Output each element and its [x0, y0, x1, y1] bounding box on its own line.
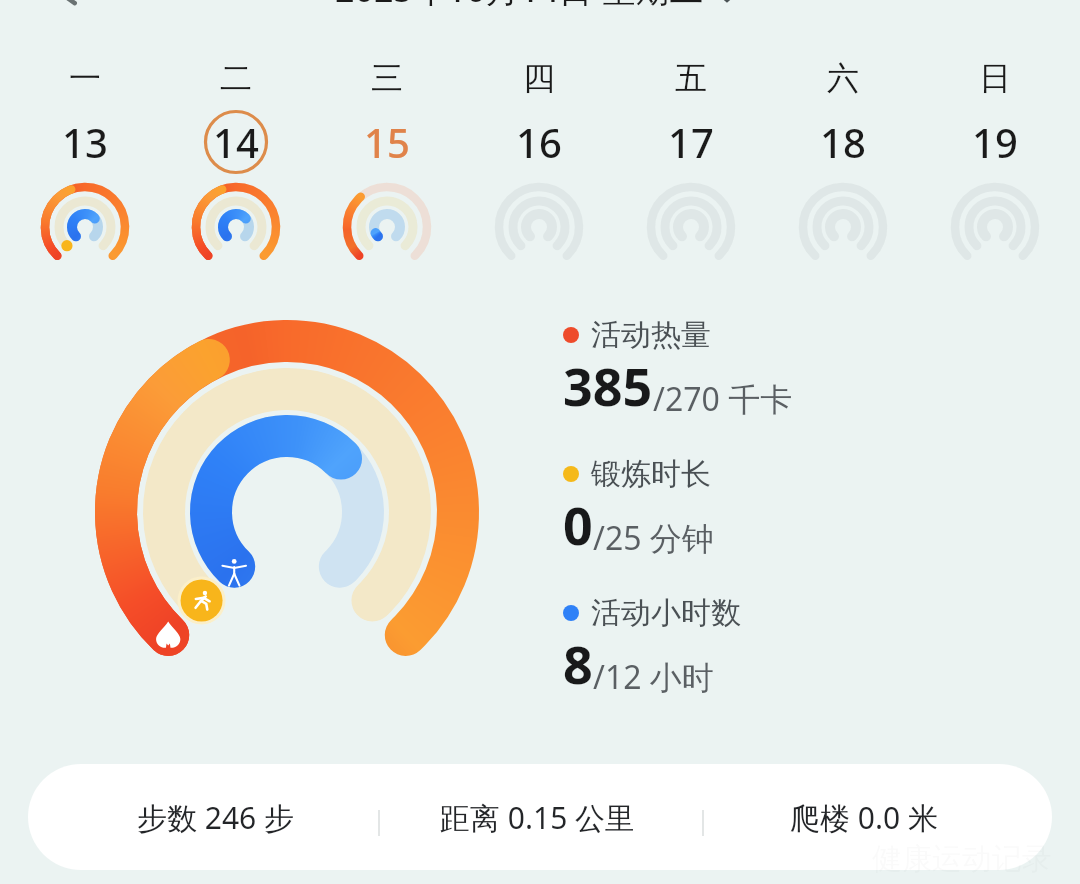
- staticText: 18: [820, 115, 866, 169]
- staticText: 活动热量: [591, 316, 711, 354]
- button[interactable]: 步数 246 步: [28, 764, 378, 870]
- staticText: 二: [220, 58, 252, 98]
- staticText: 四: [523, 58, 555, 98]
- button[interactable]: 四: [463, 58, 615, 272]
- button[interactable]: 六: [767, 58, 919, 272]
- button[interactable]: Activity rings: calories, exercise, stan…: [20, 300, 555, 700]
- staticText: 距离 0.15 公里: [440, 797, 636, 838]
- staticText: /25 分钟: [593, 516, 714, 560]
- button[interactable]: 锻炼时长: [563, 455, 714, 564]
- button[interactable]: 二: [160, 58, 311, 272]
- staticText: 16: [516, 115, 562, 169]
- staticText: 19: [972, 115, 1018, 169]
- staticText: 活动小时数: [591, 594, 741, 632]
- staticText: 五: [675, 58, 707, 98]
- button[interactable]: Back: [40, 0, 96, 12]
- button[interactable]: 三: [311, 58, 463, 272]
- staticText: /12 小时: [593, 655, 714, 699]
- staticText: 健康运动记录: [872, 840, 1052, 878]
- staticText: 385: [563, 350, 653, 421]
- staticText: 15: [364, 115, 410, 169]
- button[interactable]: 爬楼 0.0 米: [702, 764, 1052, 870]
- staticText: 步数 246 步: [137, 797, 295, 838]
- button[interactable]: 五: [615, 58, 767, 272]
- staticText: 日: [979, 58, 1011, 98]
- button[interactable]: 日: [919, 58, 1071, 272]
- staticText: 14: [213, 115, 259, 169]
- staticText: 六: [827, 58, 859, 98]
- button[interactable]: 活动热量: [563, 316, 793, 425]
- staticText: 锻炼时长: [591, 455, 711, 493]
- button[interactable]: 一: [9, 58, 160, 272]
- staticText: 三: [371, 58, 403, 98]
- staticText: 一: [69, 58, 101, 98]
- button[interactable]: 活动小时数: [563, 594, 741, 703]
- button[interactable]: 2025年10月14日 星期二: [335, 0, 738, 6]
- staticText: 2025年10月14日 星期二: [335, 0, 704, 6]
- staticText: 爬楼 0.0 米: [790, 797, 938, 838]
- staticText: 17: [668, 115, 714, 169]
- staticText: 0: [563, 489, 593, 560]
- staticText: 13: [62, 115, 108, 169]
- staticText: /270 千卡: [653, 377, 793, 421]
- button[interactable]: 距离 0.15 公里: [378, 764, 702, 870]
- staticText: 8: [563, 628, 593, 699]
